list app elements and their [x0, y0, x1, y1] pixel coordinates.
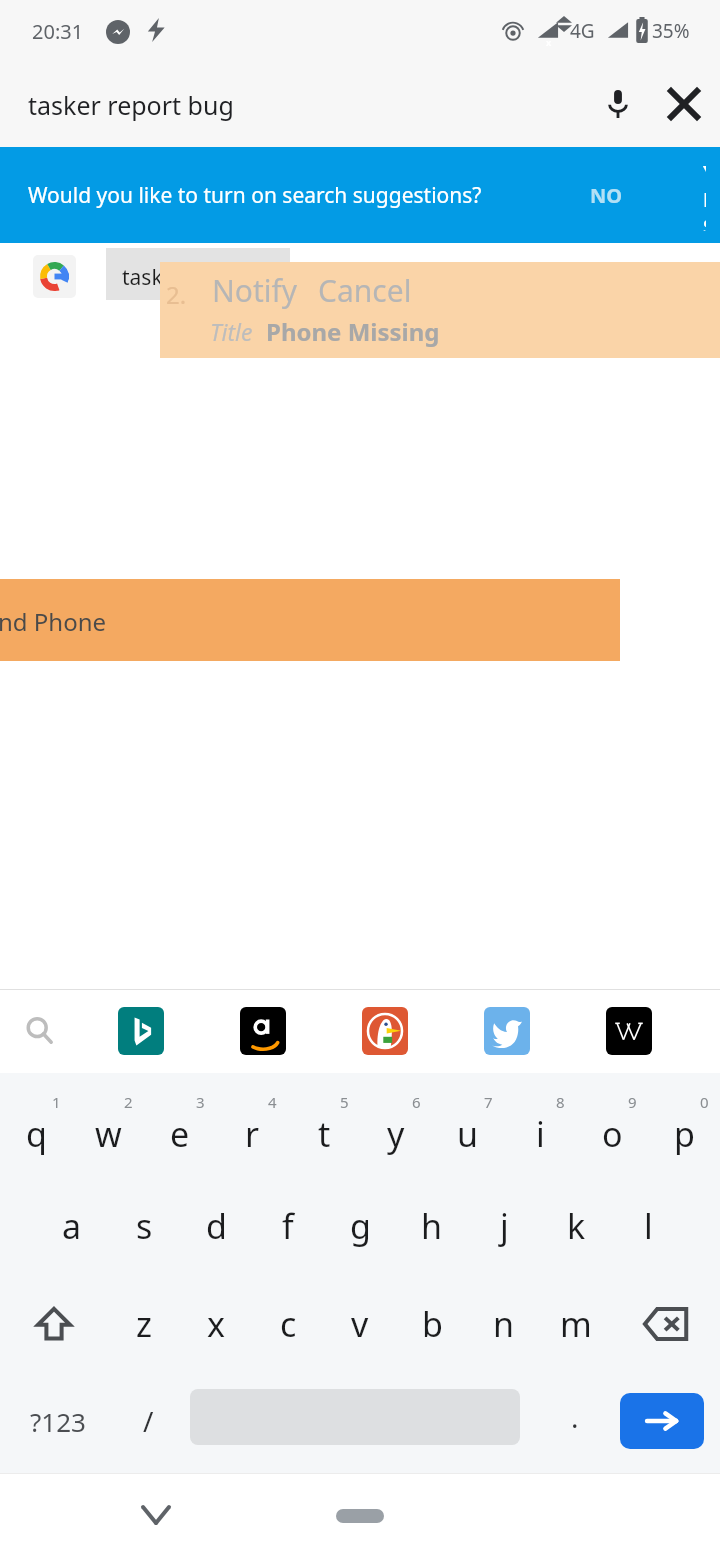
staticText: tasker report bug — [122, 263, 295, 292]
staticText: 5 — [340, 1092, 349, 1112]
staticText: l — [644, 1203, 653, 1249]
staticText: ?123 — [30, 1404, 86, 1439]
staticText: e — [170, 1111, 190, 1157]
button[interactable]: Search engine — [118, 1007, 164, 1055]
staticText: c — [280, 1301, 297, 1347]
button[interactable]: Search — [14, 1005, 66, 1057]
staticText: 9 — [628, 1092, 637, 1112]
button[interactable]: 2 — [72, 1079, 144, 1177]
staticText: Title — [210, 316, 253, 347]
button[interactable]: l — [612, 1177, 684, 1275]
button[interactable]: 3 — [144, 1079, 216, 1177]
staticText: x — [207, 1301, 225, 1347]
button[interactable]: Shift — [0, 1275, 108, 1373]
button[interactable]: Home — [336, 1509, 384, 1523]
staticText: Notify — [212, 270, 298, 311]
staticText: a — [62, 1203, 82, 1249]
staticText: 4G — [570, 18, 595, 44]
staticText: nd Phone — [0, 605, 107, 638]
staticText: 3 — [196, 1092, 205, 1112]
staticText: Would you like to turn on search suggest… — [28, 181, 482, 210]
staticText: p — [674, 1111, 695, 1157]
staticText: 2. — [166, 278, 187, 311]
button[interactable]: Enter — [620, 1393, 704, 1449]
button[interactable]: 5 — [288, 1079, 360, 1177]
button[interactable]: 8 — [504, 1079, 576, 1177]
button[interactable]: Search engine — [240, 1007, 286, 1055]
button[interactable]: tasker report bug — [0, 243, 720, 358]
staticText: i — [536, 1111, 545, 1157]
button[interactable]: Search engine — [484, 1007, 530, 1055]
button[interactable]: h — [396, 1177, 468, 1275]
staticText: n — [493, 1301, 515, 1347]
staticText: x — [546, 36, 552, 48]
staticText: Phone Missing — [266, 315, 440, 348]
button[interactable]: Backspace — [612, 1275, 720, 1373]
button[interactable]: a — [36, 1177, 108, 1275]
staticText: YES — [703, 159, 706, 231]
staticText: tasker report bug — [28, 88, 234, 122]
staticText: m — [560, 1301, 592, 1347]
staticText: 1 — [52, 1092, 61, 1112]
button[interactable]: 9 — [576, 1079, 648, 1177]
staticText: Cancel — [318, 270, 412, 311]
button[interactable]: YES — [689, 147, 720, 243]
button[interactable]: ?123 — [6, 1373, 110, 1469]
staticText: 35% — [652, 18, 690, 44]
button[interactable]: n — [468, 1275, 540, 1373]
button[interactable]: z — [108, 1275, 180, 1373]
staticText: h — [421, 1203, 443, 1249]
staticText: 8 — [556, 1092, 565, 1112]
staticText: z — [136, 1301, 152, 1347]
button[interactable]: d — [180, 1177, 252, 1275]
button[interactable]: . — [540, 1373, 610, 1469]
button[interactable]: 1 — [0, 1079, 72, 1177]
staticText: s — [136, 1203, 153, 1249]
staticText: 6 — [412, 1092, 421, 1112]
staticText: / — [143, 1402, 154, 1440]
button[interactable]: g — [324, 1177, 396, 1275]
button[interactable]: 7 — [432, 1079, 504, 1177]
button[interactable]: Voice search — [592, 78, 644, 130]
staticText: d — [206, 1203, 227, 1249]
button[interactable]: v — [324, 1275, 396, 1373]
staticText: y — [387, 1111, 405, 1157]
staticText: r — [245, 1111, 260, 1157]
button[interactable]: s — [108, 1177, 180, 1275]
staticText: u — [457, 1111, 479, 1157]
staticText: w — [95, 1111, 122, 1157]
button[interactable]: Search engine — [606, 1007, 652, 1055]
staticText: 0 — [700, 1092, 709, 1112]
button[interactable]: / — [112, 1373, 184, 1469]
staticText: 20:31 — [32, 18, 84, 45]
button[interactable]: Clear search — [658, 78, 710, 130]
staticText: f — [282, 1203, 294, 1249]
button[interactable]: c — [252, 1275, 324, 1373]
staticText: NO — [590, 182, 623, 209]
staticText: o — [602, 1111, 623, 1157]
staticText: q — [26, 1111, 47, 1157]
button[interactable]: Search engine — [362, 1007, 408, 1055]
staticText: 4 — [268, 1092, 277, 1112]
button[interactable]: f — [252, 1177, 324, 1275]
staticText: k — [567, 1203, 586, 1249]
button[interactable]: m — [540, 1275, 612, 1373]
staticText: j — [500, 1203, 509, 1249]
staticText: v — [351, 1301, 369, 1347]
button[interactable]: 4 — [216, 1079, 288, 1177]
staticText: b — [422, 1301, 443, 1347]
button[interactable]: k — [540, 1177, 612, 1275]
button[interactable]: Hide keyboard — [130, 1489, 182, 1541]
button[interactable]: j — [468, 1177, 540, 1275]
button[interactable]: NO — [572, 170, 641, 221]
button[interactable]: 0 — [648, 1079, 720, 1177]
button[interactable]: b — [396, 1275, 468, 1373]
staticText: 2 — [124, 1092, 133, 1112]
staticText: 7 — [484, 1092, 493, 1112]
button[interactable]: x — [180, 1275, 252, 1373]
staticText: g — [350, 1203, 371, 1249]
staticText: t — [318, 1111, 331, 1157]
staticText: . — [571, 1398, 579, 1436]
button[interactable]: 6 — [360, 1079, 432, 1177]
